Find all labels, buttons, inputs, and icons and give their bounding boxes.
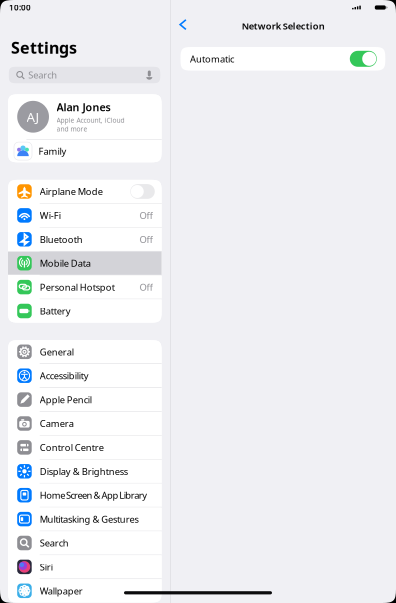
- button[interactable]: Accessibility: [8, 364, 162, 387]
- staticText: Wi-Fi: [40, 209, 61, 222]
- staticText: Network Selection: [242, 20, 325, 32]
- button[interactable]: Wallpaper: [8, 579, 162, 602]
- staticText: Settings: [11, 37, 77, 58]
- staticText: Search: [28, 69, 57, 81]
- staticText: Mobile Data: [40, 257, 91, 269]
- button[interactable]: Apple Pencil: [8, 388, 162, 411]
- staticText: Off: [139, 233, 152, 245]
- staticText: Search: [40, 537, 69, 549]
- staticText: Bluetooth: [40, 233, 83, 245]
- button[interactable]: Family: [8, 140, 162, 162]
- button[interactable]: Bluetooth: [8, 228, 162, 251]
- staticText: Alan Jones: [56, 100, 110, 114]
- staticText: Family: [38, 145, 66, 157]
- button[interactable]: Siri: [8, 555, 162, 578]
- button[interactable]: Back: [176, 16, 194, 36]
- button[interactable]: Wi-Fi: [8, 204, 162, 227]
- staticText: Siri: [40, 561, 53, 573]
- button[interactable]: General: [8, 340, 162, 363]
- button[interactable]: Multitasking & Gestures: [8, 507, 162, 531]
- staticText: Camera: [40, 417, 74, 430]
- staticText: Automatic: [190, 53, 234, 65]
- button[interactable]: Battery: [8, 299, 162, 323]
- button[interactable]: AJ: [8, 94, 162, 139]
- staticText: Personal Hotspot: [40, 281, 115, 293]
- staticText: Airplane Mode: [40, 185, 103, 198]
- button[interactable]: Airplane Mode: [8, 180, 162, 203]
- staticText: Off: [139, 209, 152, 222]
- button[interactable]: Personal Hotspot: [8, 275, 162, 299]
- staticText: Wallpaper: [40, 585, 83, 597]
- button[interactable]: Display & Brightness: [8, 460, 162, 483]
- button[interactable]: Mobile Data: [8, 251, 162, 275]
- staticText: AJ: [27, 108, 40, 126]
- button[interactable]: Home Screen & App Library: [8, 483, 162, 507]
- staticText: 10:00: [9, 2, 31, 13]
- staticText: Home Screen & App Library: [40, 489, 147, 501]
- button[interactable]: Search: [8, 531, 162, 555]
- staticText: Control Centre: [40, 441, 104, 454]
- staticText: Multitasking & Gestures: [40, 513, 138, 525]
- staticText: Accessibility: [40, 369, 89, 382]
- button[interactable]: Control Centre: [8, 436, 162, 459]
- staticText: Off: [139, 281, 152, 293]
- staticText: Apple Pencil: [40, 393, 92, 406]
- button[interactable]: Automatic: [180, 47, 385, 71]
- staticText: General: [40, 346, 74, 358]
- staticText: Battery: [40, 305, 71, 317]
- button[interactable]: Camera: [8, 412, 162, 435]
- staticText: Display & Brightness: [40, 465, 128, 477]
- staticText: and more: [56, 125, 87, 133]
- staticText: Apple Account, iCloud: [56, 116, 124, 125]
